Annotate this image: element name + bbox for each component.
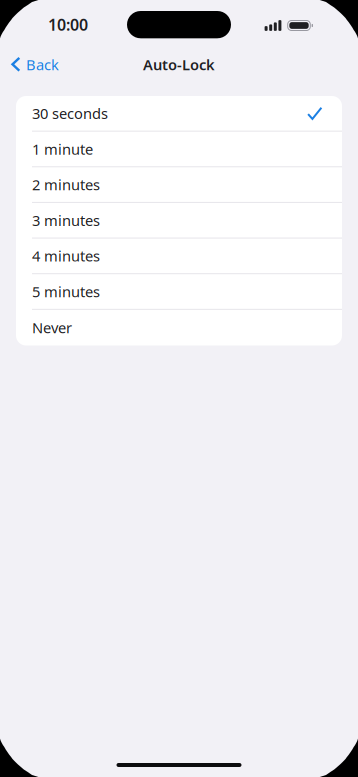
- button[interactable]: 4 minutes: [16, 239, 342, 274]
- staticText: Back: [26, 55, 59, 74]
- button[interactable]: Never: [16, 310, 342, 345]
- staticText: 1 minute: [32, 139, 93, 159]
- staticText: 2 minutes: [32, 175, 100, 194]
- button[interactable]: 3 minutes: [16, 203, 342, 238]
- button[interactable]: 5 minutes: [16, 274, 342, 310]
- button[interactable]: Back: [0, 44, 69, 85]
- staticText: Never: [32, 318, 72, 337]
- staticText: 4 minutes: [32, 246, 100, 266]
- staticText: 3 minutes: [32, 210, 100, 230]
- staticText: 5 minutes: [32, 282, 100, 301]
- staticText: 10:00: [48, 14, 88, 35]
- staticText: 30 seconds: [32, 104, 108, 123]
- button[interactable]: 2 minutes: [16, 167, 342, 203]
- button[interactable]: 30 seconds: [16, 96, 342, 132]
- staticText: Auto-Lock: [143, 55, 215, 74]
- button[interactable]: 1 minute: [16, 132, 342, 167]
